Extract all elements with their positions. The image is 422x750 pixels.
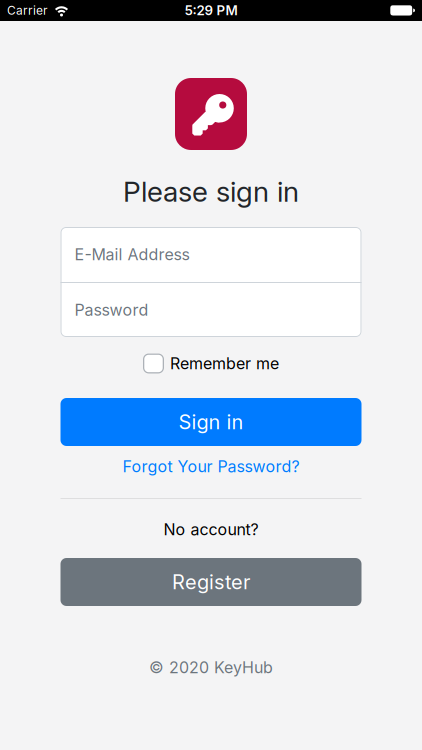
staticText: Sign in [178, 410, 243, 434]
button[interactable]: Password [60, 283, 361, 337]
button[interactable]: Remember me [143, 353, 279, 374]
staticText: No account? [163, 520, 258, 539]
button[interactable]: Sign in [60, 398, 361, 446]
button[interactable]: E-Mail Address [60, 227, 361, 282]
staticText: Register [172, 570, 250, 594]
staticText: Remember me [170, 354, 279, 373]
button[interactable]: Forgot Your Password? [122, 456, 299, 477]
staticText: Password [74, 301, 148, 319]
staticText: Forgot Your Password? [122, 457, 299, 476]
button[interactable]: Register [60, 558, 361, 606]
staticText: Carrier [7, 3, 48, 18]
staticText: 5:29 PM [184, 3, 237, 18]
staticText: Please sign in [123, 175, 299, 208]
staticText: E-Mail Address [74, 245, 189, 264]
staticText: © 2020 KeyHub [149, 658, 273, 677]
